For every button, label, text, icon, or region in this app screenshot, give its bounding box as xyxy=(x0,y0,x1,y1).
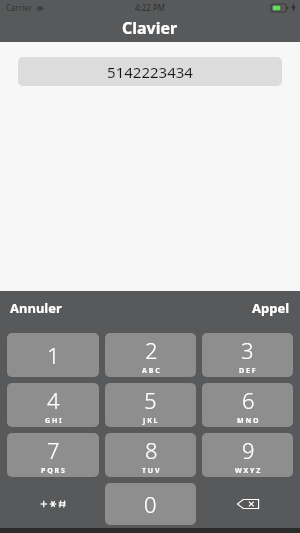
staticText: P Q R S xyxy=(41,466,65,476)
staticText: M N O xyxy=(237,416,259,426)
staticText: J K L xyxy=(143,416,158,426)
staticText: Clavier xyxy=(122,17,178,39)
staticText: W X Y Z xyxy=(235,466,261,476)
staticText: 5 xyxy=(144,385,157,415)
staticText: 9 xyxy=(242,435,255,465)
button[interactable]: Annuler xyxy=(0,291,72,325)
staticText: Carrier xyxy=(6,2,33,13)
button[interactable]: 1 xyxy=(7,333,99,377)
button[interactable]: 9 xyxy=(202,433,293,477)
staticText: Appel xyxy=(252,299,290,317)
staticText: 7 xyxy=(47,435,60,465)
staticText: A B C xyxy=(142,366,160,376)
staticText: 8 xyxy=(145,435,158,465)
button[interactable]: Delete xyxy=(202,483,293,525)
staticText: 3 xyxy=(241,335,254,365)
staticText: Annuler xyxy=(10,299,62,317)
button[interactable]: 7 xyxy=(7,433,99,477)
staticText: 2 xyxy=(145,335,158,365)
button[interactable]: Plus star pound xyxy=(7,483,99,525)
button[interactable]: 8 xyxy=(105,433,196,477)
staticText: 1 xyxy=(47,340,60,370)
staticText: 6 xyxy=(242,385,255,415)
button[interactable]: 3 xyxy=(202,333,293,377)
button[interactable]: 5142223434 xyxy=(18,57,282,86)
staticText: T U V xyxy=(142,466,160,476)
button[interactable]: Appel xyxy=(242,291,300,325)
staticText: G H I xyxy=(45,416,62,426)
staticText: D E F xyxy=(239,366,256,376)
button[interactable]: 2 xyxy=(105,333,196,377)
button[interactable]: 6 xyxy=(202,383,293,427)
button[interactable]: 4 xyxy=(7,383,99,427)
staticText: 4 xyxy=(47,385,60,415)
staticText: 0 xyxy=(144,489,157,519)
button[interactable]: 0 xyxy=(105,483,196,525)
staticText: 5142223434 xyxy=(107,62,193,82)
staticText: 4:22 PM xyxy=(135,2,166,13)
button[interactable]: 5 xyxy=(105,383,196,427)
